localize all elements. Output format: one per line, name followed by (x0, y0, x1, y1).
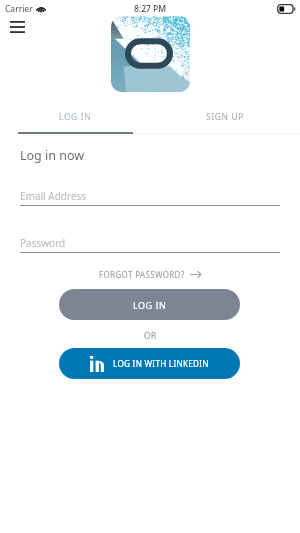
staticText: Password (20, 236, 66, 250)
button[interactable]: LOG IN WITH LINKEDIN (59, 348, 240, 379)
button[interactable]: LOG IN (0, 103, 150, 131)
staticText: Email Address (20, 189, 87, 203)
button[interactable]: FORGOT PASSWORD? (95, 267, 205, 282)
staticText: Carrier (5, 3, 33, 15)
button[interactable]: SIGN UP (150, 103, 300, 131)
button[interactable]: LOG IN (59, 289, 240, 320)
staticText: SIGN UP (206, 111, 244, 123)
staticText: 8:27 PM (134, 3, 167, 15)
staticText: OR (0, 329, 300, 341)
staticText: LOG IN (133, 299, 167, 311)
staticText: FORGOT PASSWORD? (99, 269, 185, 280)
staticText: LOG IN (59, 111, 92, 123)
staticText: Log in now (20, 147, 85, 164)
staticText: LOG IN WITH LINKEDIN (113, 358, 209, 369)
button[interactable]: Menu (3, 12, 32, 41)
